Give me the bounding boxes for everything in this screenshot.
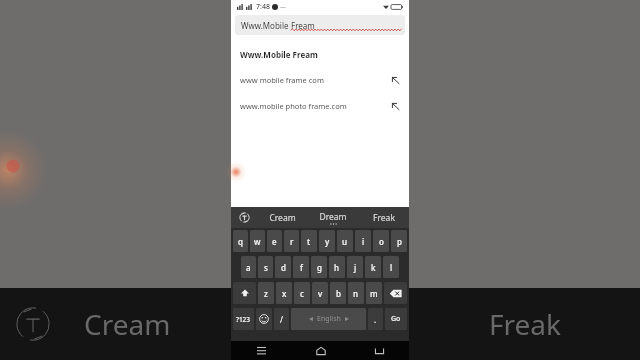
staticText: l (390, 262, 393, 273)
button[interactable]: Home (291, 341, 350, 360)
button[interactable]: Translate (231, 207, 257, 228)
staticText: English (317, 314, 341, 324)
staticText: b (336, 288, 341, 299)
button[interactable]: www.mobile photo frame.com (231, 93, 409, 119)
button[interactable]: p (391, 230, 407, 252)
button[interactable]: Freak (358, 207, 409, 228)
button[interactable]: y (319, 230, 335, 252)
button[interactable]: z (258, 282, 274, 304)
button[interactable]: d (275, 256, 291, 278)
staticText: u (342, 236, 348, 247)
button[interactable]: Recent apps (231, 341, 291, 360)
button[interactable]: a (241, 256, 256, 278)
staticText: n (353, 288, 359, 299)
button[interactable]: i (355, 230, 371, 252)
staticText: c (300, 288, 304, 299)
button[interactable]: Www.Mobile Fream (231, 41, 409, 67)
button[interactable]: Emoji (256, 308, 272, 330)
staticText: v (318, 288, 323, 299)
button[interactable]: Cream (257, 207, 307, 228)
staticText: Fream (291, 20, 315, 31)
button[interactable]: c (294, 282, 310, 304)
staticText: z (264, 288, 268, 299)
staticText: 7:48 (256, 2, 270, 12)
button[interactable]: ?123 (233, 308, 254, 330)
staticText: Cream (84, 305, 171, 343)
staticText: r (290, 236, 294, 247)
staticText: Freak (489, 305, 561, 343)
button[interactable]: Insert suggestion (390, 101, 401, 112)
button[interactable]: f (293, 256, 309, 278)
staticText: . (374, 314, 377, 325)
staticText: e (272, 236, 277, 247)
staticText: Www.Mobile Fream (240, 49, 318, 60)
button[interactable]: English (291, 308, 366, 330)
staticText: y (325, 236, 330, 247)
staticText: ?123 (236, 315, 251, 324)
button[interactable]: Dream (307, 207, 358, 228)
button[interactable]: j (347, 256, 363, 278)
button[interactable]: Www.Mobile (235, 15, 405, 35)
button[interactable]: Go (385, 308, 407, 330)
button[interactable]: q (233, 230, 248, 252)
staticText: t (307, 236, 311, 247)
staticText: / (280, 314, 283, 325)
button[interactable]: g (311, 256, 327, 278)
button[interactable]: w (250, 230, 265, 252)
button[interactable]: h (329, 256, 345, 278)
staticText: Go (391, 314, 401, 324)
staticText: k (371, 262, 376, 273)
button[interactable]: Shift (233, 282, 256, 304)
staticText: — (280, 3, 287, 11)
button[interactable]: b (330, 282, 346, 304)
staticText: www mobile frame com (240, 75, 324, 85)
staticText: m (370, 288, 378, 299)
button[interactable]: o (373, 230, 389, 252)
button[interactable]: Insert suggestion (390, 75, 401, 86)
staticText: Www.Mobile (241, 20, 291, 31)
button[interactable]: r (284, 230, 299, 252)
button[interactable]: Backspace (384, 282, 407, 304)
staticText: h (334, 262, 340, 273)
button[interactable]: www mobile frame com (231, 67, 409, 93)
button[interactable]: u (337, 230, 353, 252)
staticText: Dream (319, 211, 347, 223)
staticText: o (379, 236, 384, 247)
staticText: g (317, 262, 322, 273)
button[interactable]: s (258, 256, 273, 278)
button[interactable]: l (383, 256, 399, 278)
button[interactable]: e (267, 230, 282, 252)
staticText: q (238, 236, 243, 247)
button[interactable]: Back (350, 341, 409, 360)
button[interactable]: t (301, 230, 317, 252)
staticText: w (254, 236, 261, 247)
staticText: j (354, 262, 357, 273)
button[interactable]: n (348, 282, 364, 304)
staticText: f (300, 262, 303, 273)
button[interactable]: x (276, 282, 292, 304)
staticText: i (362, 236, 365, 247)
button[interactable]: / (274, 308, 289, 330)
staticText: Freak (373, 212, 395, 224)
staticText: s (264, 262, 268, 273)
button[interactable]: k (365, 256, 381, 278)
button[interactable]: m (366, 282, 382, 304)
staticText: Cream (269, 212, 296, 224)
staticText: x (282, 288, 287, 299)
staticText: www.mobile photo frame.com (240, 101, 347, 111)
staticText: d (281, 262, 286, 273)
button[interactable]: . (368, 308, 383, 330)
button[interactable]: v (312, 282, 328, 304)
staticText: p (397, 236, 402, 247)
staticText: a (246, 262, 251, 273)
